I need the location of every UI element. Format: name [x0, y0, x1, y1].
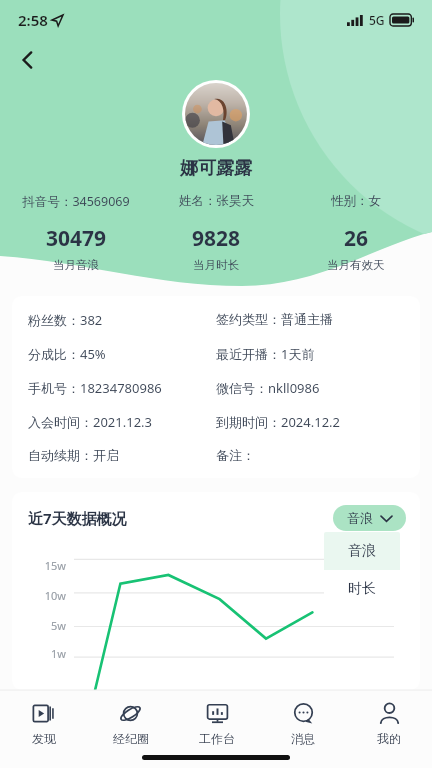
button[interactable]: 工作台	[174, 698, 260, 750]
staticText: 最近开播：1天前	[216, 345, 404, 363]
other: 经纪圈	[119, 702, 142, 725]
staticText: 抖音号：34569069	[22, 193, 130, 210]
staticText: 5w	[12, 618, 66, 633]
staticText: 发现	[32, 731, 56, 746]
staticText: 备注：	[216, 447, 404, 463]
staticText: 当月音浪	[53, 258, 99, 272]
button[interactable]: 我的	[346, 698, 432, 750]
staticText: 30479	[46, 224, 107, 253]
staticText: 签约类型：普通主播	[216, 311, 404, 327]
staticText: 我的	[377, 731, 401, 746]
staticText: 消息	[291, 731, 315, 746]
staticText: 粉丝数：382	[28, 311, 216, 329]
other: 我的	[378, 702, 401, 725]
button[interactable]: 音浪	[324, 532, 400, 570]
button[interactable]: 消息	[260, 698, 346, 750]
staticText: 手机号：18234780986	[28, 379, 216, 397]
button[interactable]: 经纪圈	[87, 698, 174, 750]
staticText: 1w	[12, 646, 66, 661]
staticText: 当月有效天	[327, 258, 385, 272]
other: 发现	[32, 702, 55, 725]
staticText: 音浪	[348, 542, 376, 560]
staticText: 当月时长	[193, 258, 239, 272]
button[interactable]: 时长	[324, 570, 400, 608]
staticText: 分成比：45%	[28, 345, 216, 363]
button[interactable]: 音浪	[333, 505, 406, 531]
staticText: 性别：女	[331, 193, 381, 209]
staticText: 10w	[12, 588, 66, 603]
staticText: 近7天数据概况	[28, 508, 127, 528]
other: 消息	[292, 702, 315, 725]
staticText: 娜可露露	[0, 157, 432, 180]
staticText: 时长	[348, 580, 376, 598]
staticText: 2:58	[18, 10, 48, 30]
staticText: 到期时间：2024.12.2	[216, 413, 404, 431]
staticText: 5G	[369, 12, 385, 28]
button[interactable]: 发现	[0, 698, 87, 750]
staticText: 15w	[12, 558, 66, 573]
button[interactable]: Back	[8, 40, 48, 80]
staticText: 姓名：张昊天	[179, 193, 254, 209]
staticText: 9828	[192, 224, 241, 253]
staticText: 经纪圈	[113, 731, 149, 746]
other: 工作台	[206, 702, 229, 725]
staticText: 自动续期：开启	[28, 447, 216, 463]
staticText: 工作台	[199, 731, 235, 746]
staticText: 入会时间：2021.12.3	[28, 413, 216, 431]
staticText: 音浪	[347, 510, 373, 526]
staticText: 微信号：nkll0986	[216, 379, 404, 397]
staticText: 26	[344, 224, 369, 253]
